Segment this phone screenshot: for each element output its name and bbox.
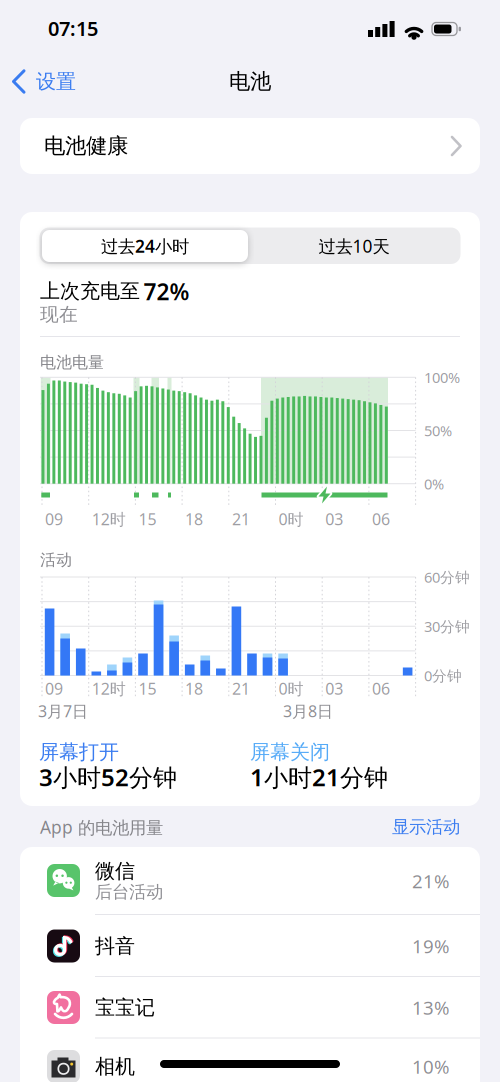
staticText: 3小时52分钟: [39, 761, 177, 793]
staticText: 过去10天: [318, 234, 389, 257]
staticText: 后台活动: [95, 881, 163, 903]
staticText: 抖音: [95, 934, 135, 958]
staticText: 3月8日: [283, 700, 333, 722]
staticText: 18: [185, 678, 203, 699]
staticText: 现在: [40, 303, 78, 326]
staticText: 屏幕打开: [39, 740, 119, 764]
staticText: 3月7日: [38, 700, 88, 722]
button[interactable]: 宝宝记: [20, 977, 480, 1038]
staticText: 0时: [279, 678, 304, 699]
staticText: 10%: [412, 1054, 450, 1079]
staticText: 21%: [412, 869, 450, 893]
staticText: 19%: [412, 934, 450, 958]
button[interactable]: 过去10天: [251, 230, 457, 262]
staticText: 0分钟: [424, 666, 462, 685]
staticText: App 的电池用量: [40, 815, 163, 838]
staticText: 电池: [229, 68, 271, 95]
staticText: 12时: [92, 678, 126, 699]
staticText: 电池电量: [40, 353, 104, 372]
staticText: 设置: [36, 69, 76, 94]
button[interactable]: 抖音: [20, 915, 480, 977]
button[interactable]: 显示活动: [0, 0, 460, 29]
staticText: 过去24小时: [101, 234, 189, 257]
staticText: 60分钟: [424, 567, 470, 587]
staticText: 50%: [424, 421, 452, 440]
staticText: 微信: [95, 859, 135, 883]
staticText: 显示活动: [392, 816, 460, 838]
button[interactable]: 设置: [0, 0, 110, 45]
staticText: 06: [372, 678, 390, 699]
staticText: 100%: [424, 368, 460, 387]
staticText: 15: [138, 508, 156, 530]
staticText: 21: [232, 678, 250, 699]
staticText: 72%: [143, 276, 189, 306]
staticText: 屏幕关闭: [250, 740, 330, 764]
staticText: 18: [185, 508, 203, 530]
staticText: 上次充电至: [40, 279, 140, 303]
staticText: 09: [45, 678, 63, 699]
staticText: 03: [325, 508, 343, 530]
staticText: 15: [138, 678, 156, 699]
staticText: 21: [232, 508, 250, 530]
staticText: 电池健康: [44, 133, 128, 159]
staticText: 13%: [412, 995, 450, 1020]
button[interactable]: 相机: [20, 1038, 480, 1082]
button[interactable]: 微信: [20, 847, 480, 915]
staticText: 宝宝记: [95, 995, 155, 1020]
staticText: 09: [45, 508, 63, 530]
staticText: 0时: [279, 508, 304, 530]
staticText: 30分钟: [424, 616, 470, 636]
staticText: 12时: [92, 508, 126, 530]
staticText: 活动: [40, 550, 72, 570]
staticText: 06: [372, 508, 390, 530]
button[interactable]: 过去24小时: [42, 230, 248, 262]
staticText: 0%: [424, 474, 444, 493]
button[interactable]: 电池健康: [20, 118, 480, 174]
staticText: 相机: [95, 1054, 135, 1079]
staticText: 07:15: [48, 15, 98, 42]
staticText: 03: [325, 678, 343, 699]
staticText: 1小时21分钟: [250, 761, 388, 793]
